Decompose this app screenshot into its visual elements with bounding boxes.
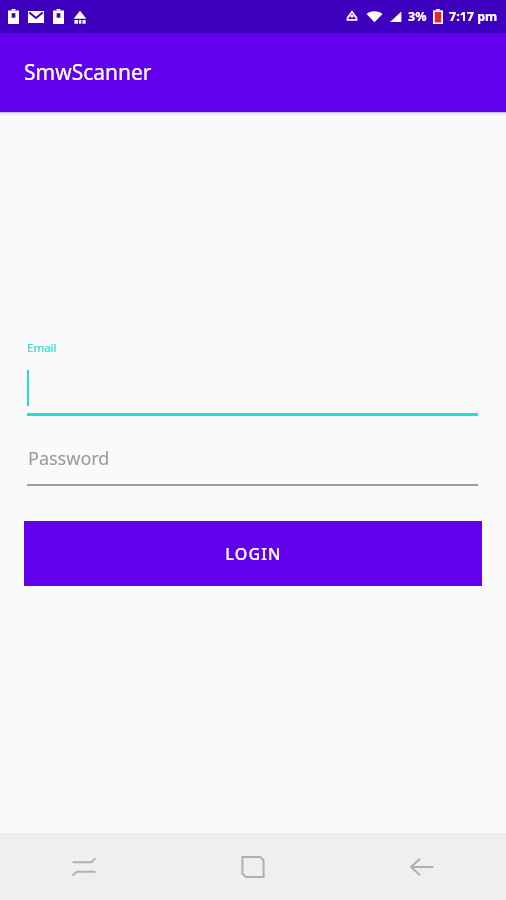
button[interactable]: Back — [337, 833, 506, 900]
button[interactable]: Recent apps — [0, 833, 168, 900]
staticText: Password — [28, 446, 110, 471]
button[interactable]: Password — [27, 438, 478, 486]
button[interactable]: Home — [168, 833, 337, 900]
staticText: LOGIN — [225, 543, 282, 565]
staticText: 7:17 pm — [449, 8, 498, 25]
staticText: 3% — [408, 8, 427, 25]
button[interactable]: Email — [27, 340, 478, 416]
staticText: SmwScanner — [24, 58, 152, 87]
staticText: Email — [27, 340, 57, 356]
button[interactable]: LOGIN — [24, 521, 482, 586]
